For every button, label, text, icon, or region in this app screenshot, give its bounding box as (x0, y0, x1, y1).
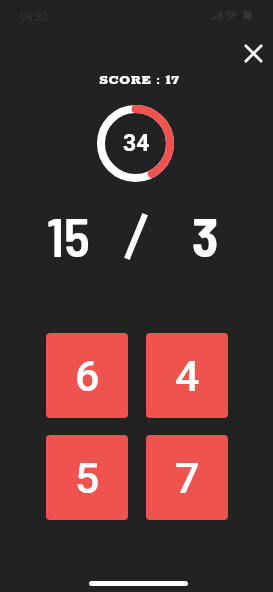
staticText: 3 (192, 203, 219, 268)
staticText: 5 (75, 453, 100, 503)
staticText: 05:32 (20, 11, 48, 24)
staticText: 4 (175, 351, 200, 401)
staticText: 15 (47, 203, 90, 268)
staticText: 6 (75, 351, 100, 401)
button[interactable]: 5 (46, 435, 128, 520)
button[interactable]: 7 (146, 435, 228, 520)
button[interactable]: 4 (146, 333, 228, 418)
button[interactable]: 6 (46, 333, 128, 418)
staticText: SCORE : 17 (3, 72, 273, 89)
staticText: 7 (175, 453, 200, 503)
button[interactable]: Close (237, 37, 269, 69)
staticText: 34 (123, 130, 150, 157)
